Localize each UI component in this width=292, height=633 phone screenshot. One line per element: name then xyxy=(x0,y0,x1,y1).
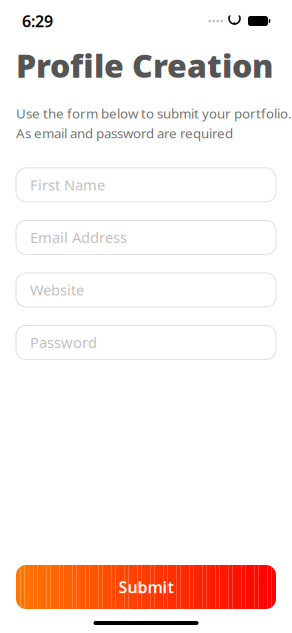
staticText: Website xyxy=(30,280,84,300)
staticText: Profile Creation xyxy=(16,44,273,86)
staticText: Password xyxy=(30,333,97,352)
staticText: Email Address xyxy=(30,228,127,247)
staticText: Use the form below to submit your portfo… xyxy=(16,104,292,122)
staticText: Submit xyxy=(118,576,173,598)
button[interactable]: Submit xyxy=(16,565,276,609)
staticText: First Name xyxy=(30,175,105,195)
staticText: As email and password are required xyxy=(16,124,233,142)
staticText: 6:29 xyxy=(22,10,53,32)
